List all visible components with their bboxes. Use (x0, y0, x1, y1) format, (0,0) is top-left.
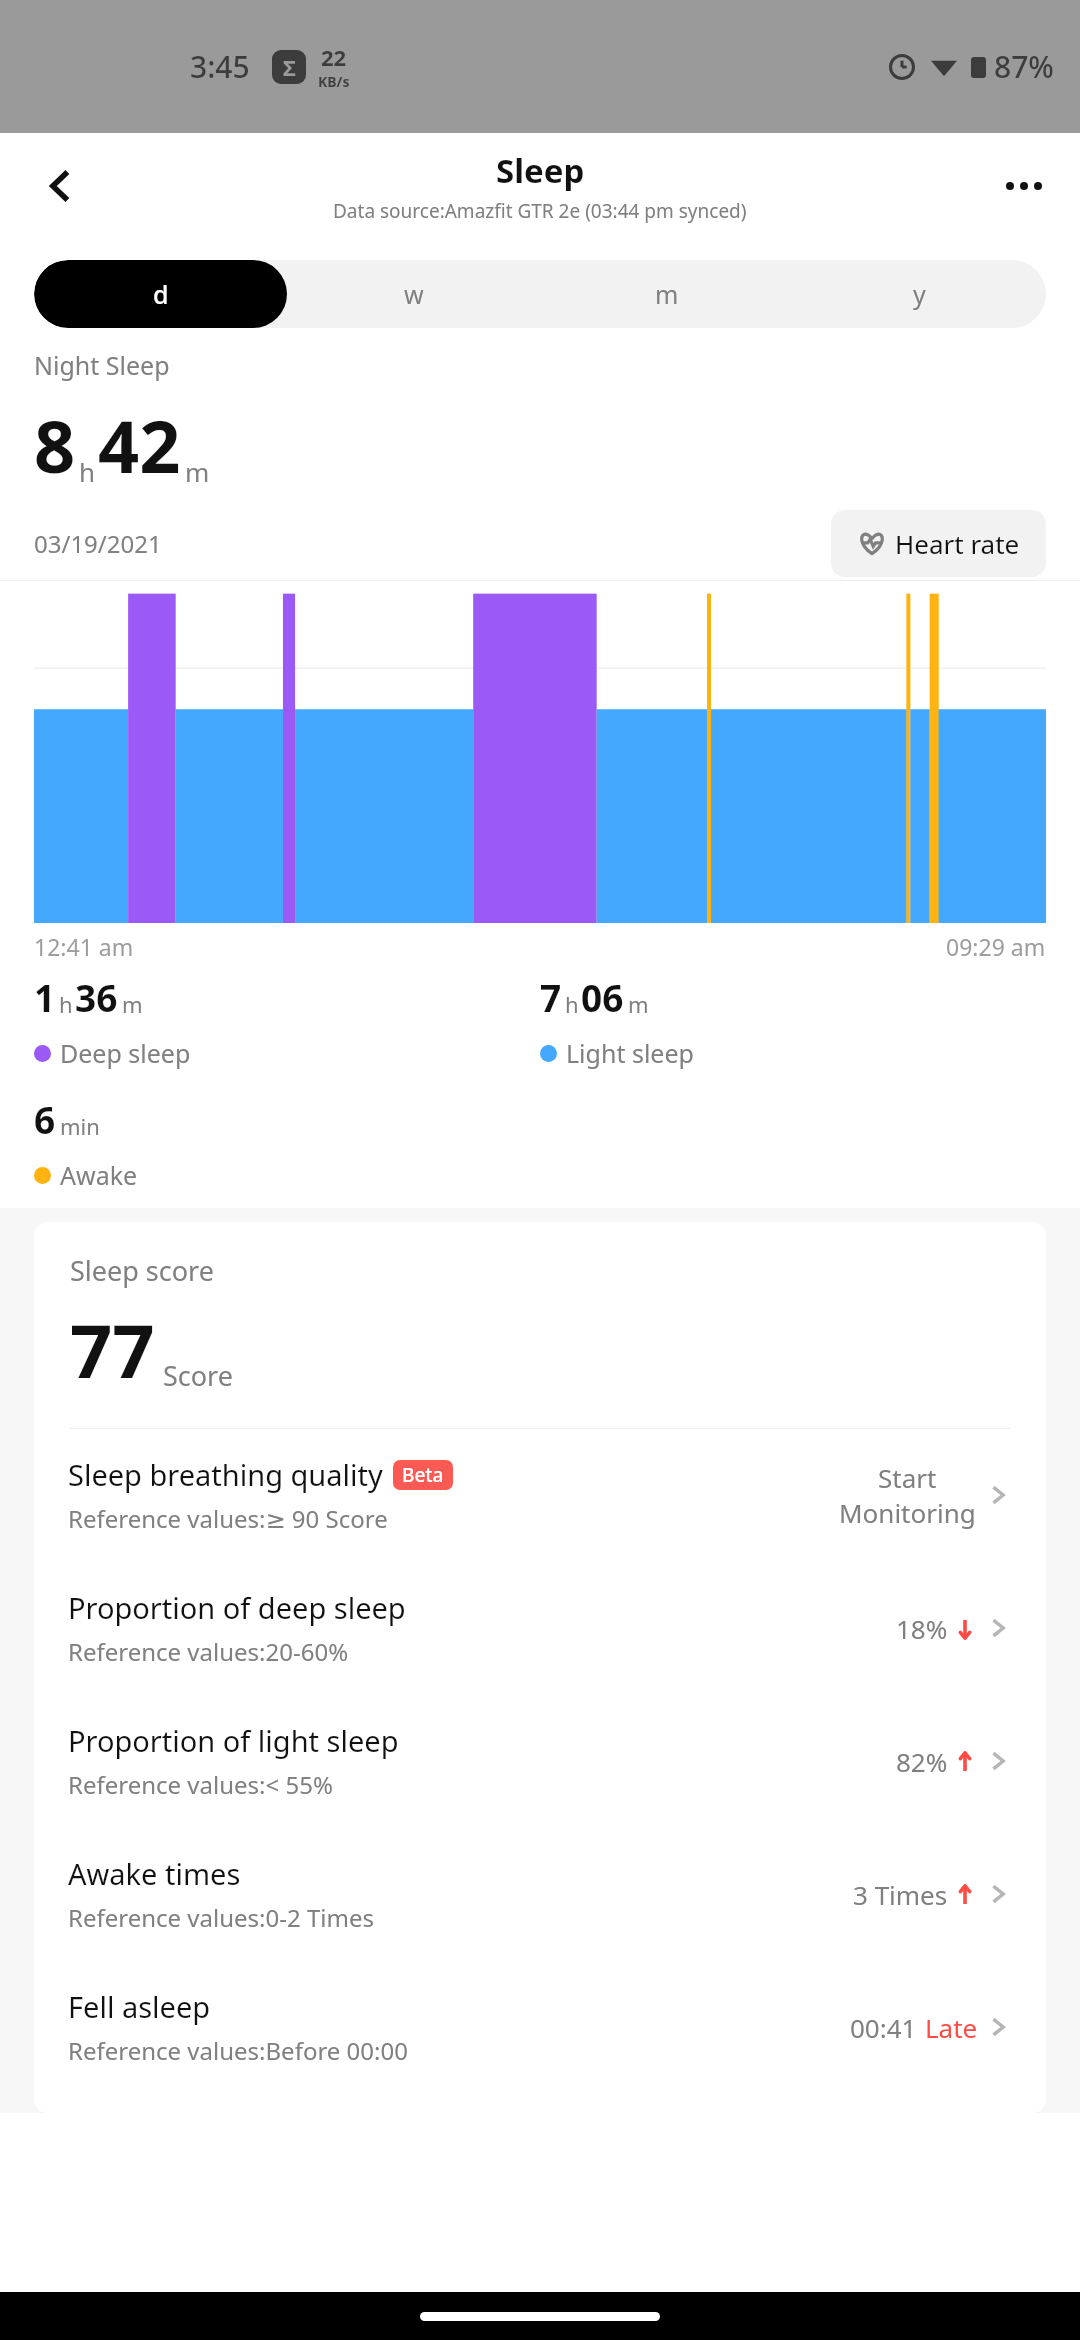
staticText: Reference values:≥ 90 Score (68, 1502, 388, 1535)
staticText: min (60, 1111, 100, 1141)
staticText: h (79, 454, 96, 489)
staticText: Sleep breathing quality (68, 1455, 383, 1494)
staticText: 03/19/2021 (34, 527, 162, 560)
staticText: h (59, 989, 73, 1019)
button[interactable]: Sleep breathing quality (34, 1429, 1046, 1561)
staticText: Awake (60, 1158, 138, 1192)
button[interactable]: m (540, 260, 793, 328)
staticText: Reference values:< 55% (68, 1768, 333, 1801)
staticText: 12:41 am (34, 931, 134, 962)
button[interactable]: Proportion of light sleep (34, 1694, 1046, 1827)
staticText: 00:41 (850, 2010, 917, 2045)
button[interactable]: Awake times (34, 1827, 1046, 1960)
staticText: w (404, 277, 424, 311)
staticText: Late (925, 2010, 978, 2045)
staticText: 3 Times (853, 1877, 948, 1912)
staticText: KB/s (318, 72, 350, 91)
staticText: 8 (34, 396, 76, 494)
staticText: 3:45 (190, 46, 250, 87)
button[interactable]: d (34, 260, 287, 328)
button[interactable]: Heart rate (831, 510, 1046, 577)
staticText: 77 (70, 1299, 155, 1400)
staticText: Heart rate (895, 526, 1020, 561)
staticText: Monitoring (839, 1495, 976, 1530)
staticText: 36 (75, 972, 118, 1022)
button[interactable]: w (287, 260, 540, 328)
staticText: h (565, 989, 579, 1019)
staticText: 87% (994, 46, 1054, 87)
staticText: m (628, 989, 649, 1019)
staticText: Σ (283, 52, 296, 82)
staticText: Light sleep (566, 1036, 694, 1070)
staticText: 18% (896, 1611, 948, 1646)
button[interactable]: More options (992, 154, 1056, 218)
staticText: Proportion of deep sleep (68, 1588, 406, 1627)
staticText: Sleep (496, 148, 585, 193)
staticText: 22 (321, 42, 347, 72)
staticText: Data source:Amazfit GTR 2e (03:44 pm syn… (333, 198, 747, 224)
staticText: 42 (98, 396, 181, 494)
staticText: d (153, 277, 169, 311)
staticText: 6 (34, 1094, 56, 1144)
staticText: 1 (34, 972, 56, 1022)
staticText: 09:29 am (946, 931, 1046, 962)
staticText: Awake times (68, 1854, 241, 1893)
staticText: Sleep score (70, 1252, 214, 1289)
staticText: Reference values:20-60% (68, 1635, 349, 1668)
staticText: 06 (581, 972, 624, 1022)
staticText: Proportion of light sleep (68, 1721, 399, 1760)
staticText: Reference values:0-2 Times (68, 1901, 374, 1934)
staticText: Score (163, 1357, 233, 1394)
staticText: m (185, 454, 210, 489)
staticText: Beta (402, 1462, 444, 1488)
button[interactable]: y (793, 260, 1046, 328)
button[interactable]: Fell asleep (34, 1960, 1046, 2093)
staticText: 82% (896, 1744, 948, 1779)
button[interactable]: Back (30, 156, 90, 216)
staticText: Fell asleep (68, 1987, 211, 2026)
staticText: Start (878, 1460, 937, 1495)
staticText: Deep sleep (60, 1036, 191, 1070)
button[interactable]: Proportion of deep sleep (34, 1561, 1046, 1694)
staticText: y (913, 277, 926, 311)
staticText: Reference values:Before 00:00 (68, 2034, 408, 2067)
staticText: 7 (540, 972, 562, 1022)
staticText: m (122, 989, 143, 1019)
staticText: Night Sleep (34, 348, 170, 382)
staticText: m (655, 277, 679, 311)
